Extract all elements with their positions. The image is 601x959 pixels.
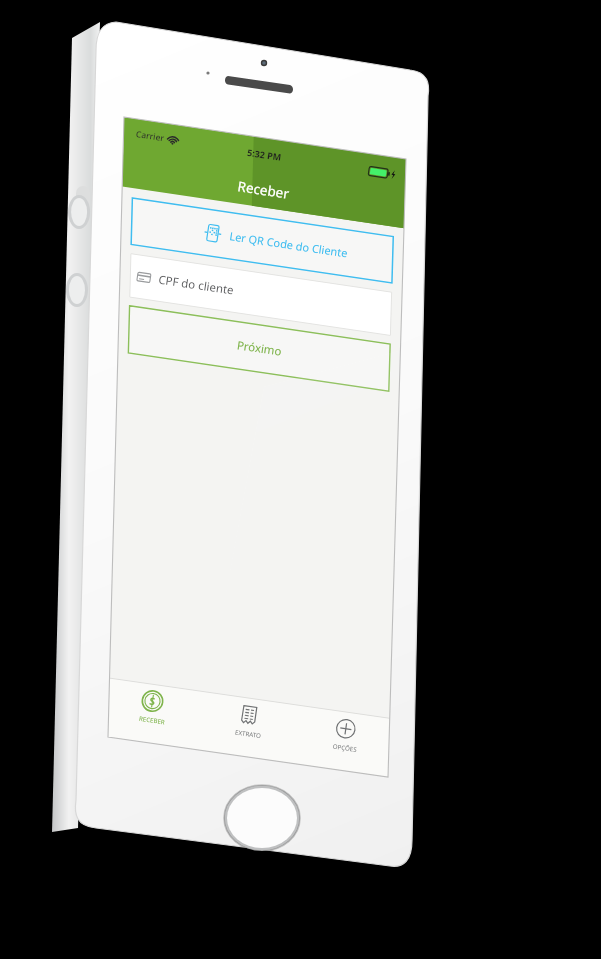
- button[interactable]: Receber screen on iPhone mockup: [0, 0, 601, 959]
